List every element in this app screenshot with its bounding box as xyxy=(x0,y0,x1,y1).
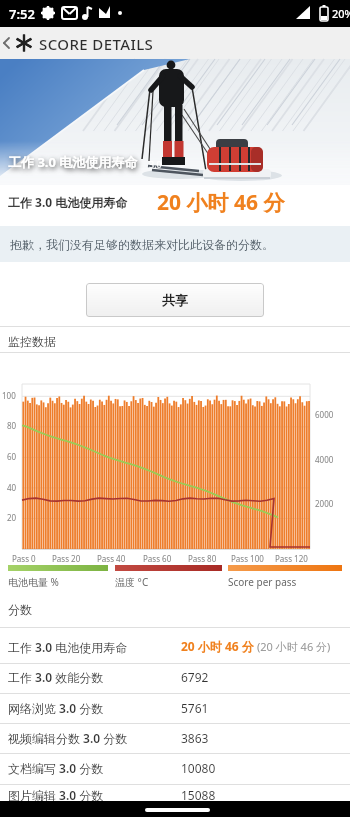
staticText: 100 xyxy=(2,390,16,401)
staticText: 温度 °C xyxy=(115,575,149,589)
staticText: 5761 xyxy=(181,700,209,716)
button[interactable] xyxy=(0,753,350,783)
staticText: 工作 3.0 电池使用寿命 xyxy=(8,639,128,655)
button[interactable]: 共享 xyxy=(86,283,264,317)
staticText: 共享 xyxy=(162,292,188,308)
staticText: Pass 40 xyxy=(97,553,126,564)
staticText: 7:52 xyxy=(9,5,35,23)
staticText: Pass 60 xyxy=(143,553,172,564)
staticText: SCORE DETAILS xyxy=(39,34,154,54)
staticText: Pass 20 xyxy=(52,553,81,564)
button[interactable] xyxy=(0,663,350,693)
staticText: Pass 100 xyxy=(231,553,264,564)
staticText: 2000 xyxy=(315,498,334,509)
staticText: 文档编写 3.0 分数 xyxy=(8,760,104,776)
staticText: 10080 xyxy=(181,760,216,776)
staticText: 分数 xyxy=(8,602,32,617)
staticText: 6792 xyxy=(181,669,209,685)
staticText: Pass 80 xyxy=(188,553,217,564)
staticText: 60 xyxy=(7,451,17,462)
staticText: 6000 xyxy=(315,409,334,420)
button[interactable] xyxy=(0,693,350,723)
staticText: 图片编辑 3.0 分数 xyxy=(8,787,104,803)
staticText: 工作 3.0 电池使用寿命 xyxy=(8,153,138,171)
staticText: 40 xyxy=(7,482,17,493)
staticText: 工作 3.0 电池使用寿命 xyxy=(8,194,128,210)
staticText: 20 xyxy=(7,512,17,523)
staticText: 80 xyxy=(7,420,17,431)
button[interactable] xyxy=(0,27,36,59)
staticText: 15088 xyxy=(181,787,216,803)
staticText: Pass 0 xyxy=(12,553,36,564)
staticText: 网络浏览 3.0 分数 xyxy=(8,700,104,716)
staticText: 视频编辑分数 3.0 分数 xyxy=(8,730,128,746)
staticText: Score per pass xyxy=(228,575,297,589)
staticText: 工作 3.0 效能分数 xyxy=(8,669,104,685)
staticText: Pass 120 xyxy=(275,553,308,564)
button[interactable] xyxy=(0,723,350,753)
staticText: 20% xyxy=(332,6,350,21)
button[interactable] xyxy=(0,627,350,663)
staticText: 监控数据 xyxy=(8,334,56,349)
button[interactable] xyxy=(0,784,350,801)
staticText: 3863 xyxy=(181,730,209,746)
staticText: 电池电量 % xyxy=(8,575,59,589)
staticText: 20 小时 46 分 xyxy=(181,638,254,654)
staticText: 3.0 xyxy=(149,158,162,170)
staticText: 20 小时 46 分 xyxy=(157,188,285,217)
staticText: 抱歉，我们没有足够的数据来对比此设备的分数。 xyxy=(10,237,274,252)
staticText: 4000 xyxy=(315,454,334,465)
staticText: (20 小时 46 分) xyxy=(257,639,331,654)
